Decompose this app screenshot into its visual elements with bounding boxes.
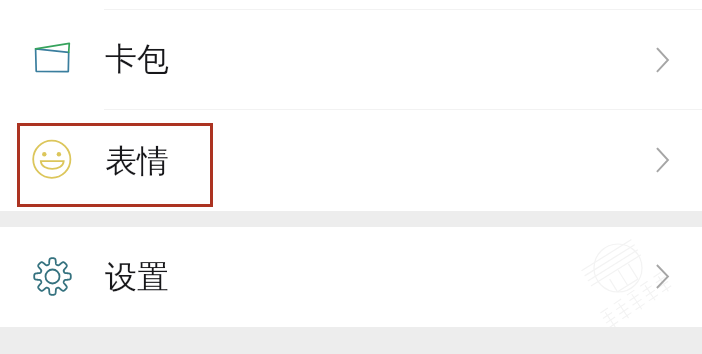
button[interactable]: 卡包 bbox=[0, 11, 702, 106]
other: Open 设置 bbox=[656, 265, 669, 288]
other: Open 卡包 bbox=[656, 48, 669, 72]
other: Open 表情 bbox=[656, 148, 669, 172]
button[interactable]: 表情 bbox=[0, 107, 702, 210]
staticText: 卡包 bbox=[105, 39, 169, 79]
staticText: 设置 bbox=[105, 257, 169, 297]
staticText: 表情 bbox=[105, 141, 169, 181]
button[interactable]: 设置 bbox=[0, 228, 702, 327]
